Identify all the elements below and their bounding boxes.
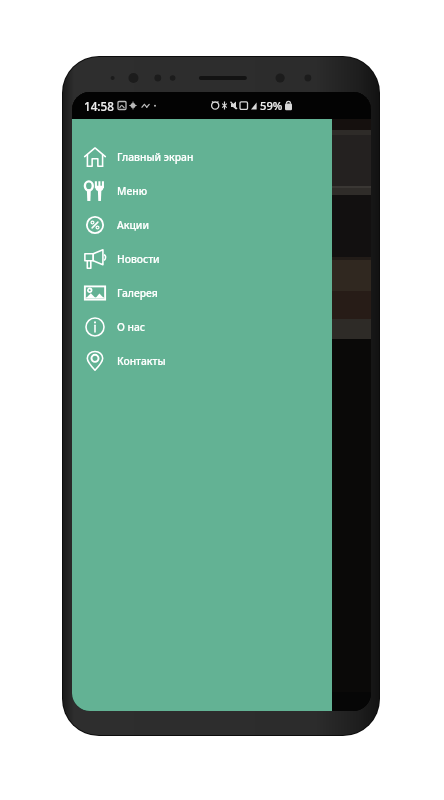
button[interactable]: О нас [72, 310, 332, 344]
button[interactable]: Close navigation drawer [332, 119, 371, 711]
button[interactable]: Акции [72, 208, 332, 242]
button[interactable]: Контакты [72, 344, 332, 378]
staticText: О нас [117, 320, 146, 334]
staticText: Главный экран [117, 150, 194, 164]
button[interactable]: Галерея [72, 276, 332, 310]
staticText: 59% [260, 98, 283, 113]
staticText: 14:58 [84, 98, 114, 114]
button[interactable]: Новости [72, 242, 332, 276]
staticText: Акции [117, 218, 149, 232]
staticText: Меню [117, 184, 148, 198]
staticText: Новости [117, 252, 160, 266]
staticText: Контакты [117, 354, 166, 368]
staticText: Галерея [117, 286, 158, 300]
button[interactable]: Меню [72, 174, 332, 208]
button[interactable]: Главный экран [72, 140, 332, 174]
